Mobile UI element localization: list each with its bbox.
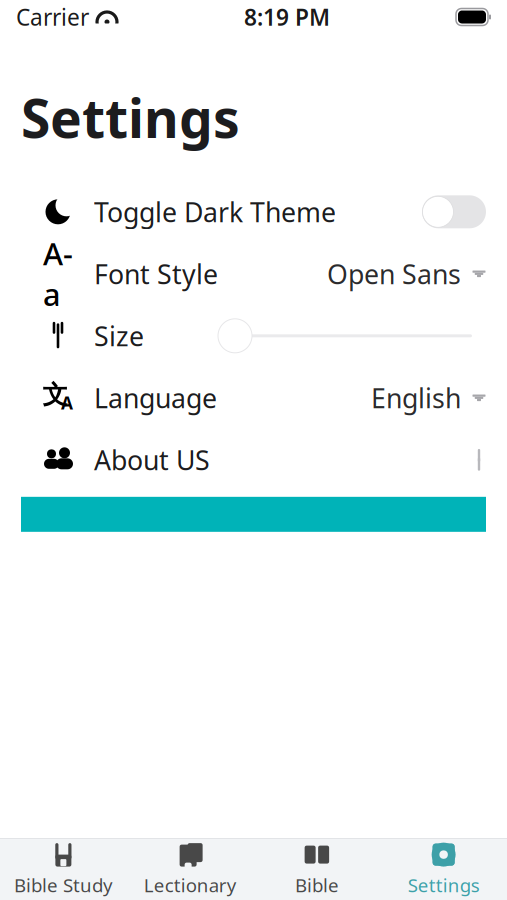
staticText: Lectionary <box>144 873 237 897</box>
button[interactable]: About US <box>0 429 507 491</box>
staticText: English <box>371 380 461 415</box>
staticText: Language <box>94 380 217 415</box>
staticText: Font Style <box>94 256 218 291</box>
staticText: 8:19 PM <box>244 2 330 32</box>
staticText: Toggle Dark Theme <box>94 194 336 229</box>
button[interactable]: Aa <box>0 243 507 305</box>
button[interactable]: Settings <box>380 839 507 900</box>
staticText: 文 <box>42 379 67 410</box>
staticText: Settings <box>21 82 240 153</box>
staticText: Aa <box>43 233 73 314</box>
staticText: Size <box>94 318 144 353</box>
staticText: About US <box>94 442 210 477</box>
staticText: Bible Study <box>14 873 113 897</box>
staticText: Bible <box>295 873 339 897</box>
button[interactable]: 文 <box>0 367 507 429</box>
staticText: Carrier <box>16 2 89 32</box>
button[interactable]: Bible <box>253 839 380 900</box>
button[interactable]: Bible Study <box>0 839 127 900</box>
button[interactable]: Toggle Dark Theme <box>0 181 507 243</box>
staticText: Settings <box>408 873 480 897</box>
staticText: Open Sans <box>327 256 461 291</box>
button[interactable]: Lectionary <box>127 839 254 900</box>
staticText: A <box>61 391 73 414</box>
